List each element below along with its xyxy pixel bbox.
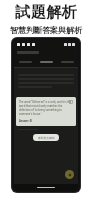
staticText: 智慧判斷答案與解析: [10, 25, 82, 35]
button[interactable]: Add: [65, 170, 74, 179]
button[interactable]: The word "Delivered" is a verb, and it i…: [16, 97, 76, 126]
button[interactable]: [57, 57, 78, 67]
button[interactable]: 重新產生解析: [33, 134, 59, 141]
staticText: Answer: B: [19, 119, 32, 123]
button[interactable]: [14, 57, 36, 67]
staticText: The word "Delivered" is a verb, and it i…: [19, 100, 73, 116]
button[interactable]: [36, 57, 57, 67]
button[interactable]: Copy: [69, 100, 73, 104]
staticText: 試題解析: [15, 3, 77, 22]
staticText: 重新產生解析: [38, 136, 55, 140]
